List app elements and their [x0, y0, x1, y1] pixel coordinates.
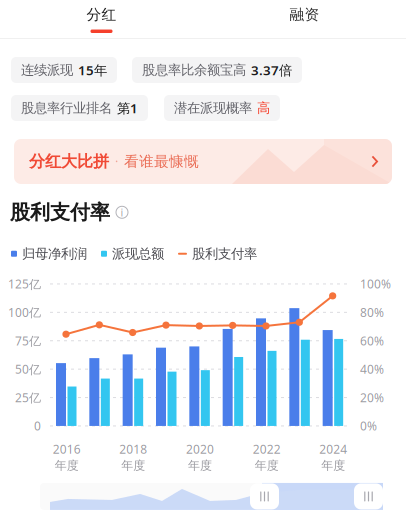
staticText: 股息率行业排名: [21, 100, 112, 116]
staticText: 年度: [55, 458, 79, 473]
staticText: 股利支付率: [10, 200, 110, 225]
staticText: 125亿: [8, 276, 41, 292]
staticText: 连续派现: [21, 62, 73, 78]
staticText: 80%: [360, 304, 384, 320]
button[interactable]: 连续派现: [11, 57, 117, 83]
staticText: 分红大比拼: [29, 152, 109, 171]
staticText: 看谁最慷慨: [124, 152, 199, 170]
staticText: 潜在派现概率: [174, 100, 252, 116]
staticText: 75亿: [15, 333, 41, 349]
staticText: 归母净利润: [22, 246, 87, 262]
staticText: 第1: [117, 99, 138, 117]
button[interactable]: Range start: [250, 483, 279, 510]
staticText: 100%: [360, 276, 391, 292]
staticText: 年度: [321, 458, 345, 473]
staticText: i: [120, 205, 123, 219]
staticText: 25亿: [15, 390, 41, 405]
staticText: 派现总额: [112, 246, 164, 262]
staticText: 2022: [253, 441, 281, 457]
staticText: 高: [257, 100, 270, 116]
staticText: 60%: [360, 333, 384, 349]
staticText: 2024: [319, 441, 347, 457]
button[interactable]: 潜在派现概率: [164, 95, 280, 121]
staticText: 年度: [121, 458, 145, 473]
staticText: 年度: [255, 458, 279, 473]
staticText: 年度: [188, 458, 212, 473]
staticText: 3.37倍: [251, 61, 292, 79]
staticText: 股息率比余额宝高: [142, 62, 246, 78]
button[interactable]: 分红: [0, 0, 203, 38]
button[interactable]: 股息率比余额宝高: [132, 57, 302, 83]
staticText: 2016: [53, 441, 81, 457]
staticText: 15年: [78, 61, 107, 79]
staticText: 0: [34, 418, 41, 434]
staticText: 2020: [186, 441, 214, 457]
staticText: 40%: [360, 361, 384, 377]
button[interactable]: Range end: [354, 483, 383, 510]
staticText: 分红: [86, 5, 116, 23]
staticText: 20%: [360, 390, 384, 405]
button[interactable]: 股息率行业排名: [11, 95, 148, 121]
staticText: 0%: [360, 418, 377, 434]
staticText: 股利支付率: [192, 246, 257, 262]
staticText: 2018: [119, 441, 147, 457]
staticText: ·: [109, 153, 124, 169]
staticText: 50亿: [15, 361, 41, 377]
staticText: 融资: [289, 5, 319, 23]
staticText: 100亿: [8, 304, 41, 320]
button[interactable]: 分红大比拼: [14, 139, 392, 184]
button[interactable]: 融资: [203, 0, 406, 38]
